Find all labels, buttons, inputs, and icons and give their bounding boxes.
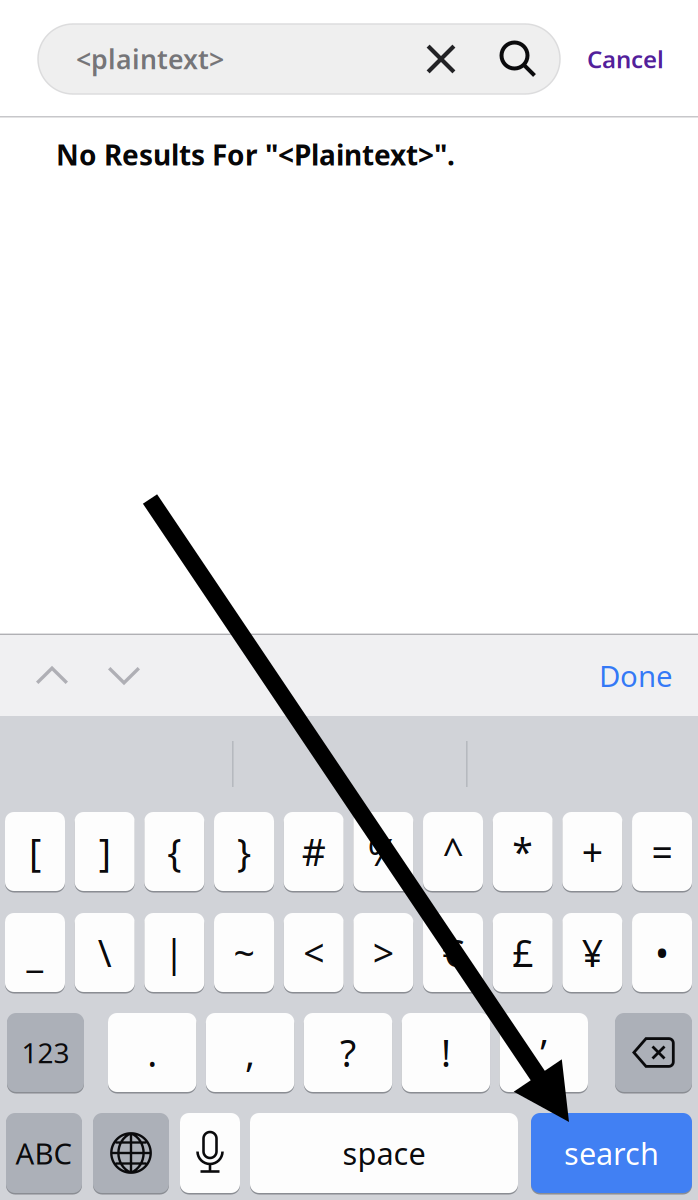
staticText: 123 bbox=[21, 1034, 69, 1071]
button[interactable]: Previous field bbox=[17, 635, 87, 716]
staticText: < bbox=[303, 928, 324, 977]
button[interactable]: { bbox=[144, 812, 204, 891]
button[interactable]: < bbox=[284, 913, 344, 992]
staticText: [ bbox=[29, 827, 41, 876]
staticText: Done bbox=[599, 656, 673, 695]
button[interactable]: Done bbox=[583, 635, 689, 716]
button[interactable]: ? bbox=[304, 1013, 392, 1092]
button[interactable]: ~ bbox=[214, 913, 274, 992]
button[interactable]: • bbox=[632, 913, 692, 992]
button[interactable]: Cancel bbox=[575, 24, 676, 94]
staticText: ? bbox=[340, 1028, 356, 1077]
staticText: # bbox=[302, 827, 326, 876]
button[interactable]: Dictation bbox=[180, 1113, 240, 1193]
staticText: € bbox=[442, 928, 463, 977]
staticText: space bbox=[342, 1133, 425, 1173]
staticText: ! bbox=[441, 1028, 451, 1077]
staticText: No Results For "<Plaintext>". bbox=[56, 136, 455, 173]
button[interactable]: ¥ bbox=[562, 913, 622, 992]
staticText: ¥ bbox=[582, 928, 603, 977]
button[interactable]: £ bbox=[493, 913, 553, 992]
button[interactable]: ABC bbox=[6, 1113, 82, 1193]
button[interactable]: % bbox=[353, 812, 413, 891]
staticText: . bbox=[147, 1028, 157, 1077]
button[interactable]: } bbox=[214, 812, 274, 891]
staticText: ^ bbox=[442, 827, 463, 876]
staticText: • bbox=[655, 928, 669, 977]
staticText: <plaintext> bbox=[76, 41, 224, 77]
button[interactable]: = bbox=[632, 812, 692, 891]
staticText: ] bbox=[99, 827, 111, 876]
button[interactable]: . bbox=[108, 1013, 196, 1092]
staticText: \ bbox=[98, 928, 112, 977]
button[interactable]: ^ bbox=[423, 812, 483, 891]
staticText: , bbox=[245, 1028, 255, 1077]
staticText: * bbox=[512, 827, 533, 876]
staticText: search bbox=[564, 1133, 659, 1173]
staticText: ~ bbox=[233, 928, 254, 977]
staticText: % bbox=[368, 827, 399, 876]
button[interactable]: | bbox=[144, 913, 204, 992]
button[interactable]: Next keyboard bbox=[93, 1113, 169, 1193]
button[interactable]: + bbox=[562, 812, 622, 891]
button[interactable]: ] bbox=[75, 812, 135, 891]
button[interactable]: > bbox=[353, 913, 413, 992]
staticText: = bbox=[651, 827, 672, 876]
button[interactable]: space bbox=[250, 1113, 518, 1193]
button[interactable]: search bbox=[531, 1113, 692, 1193]
button[interactable]: <plaintext> bbox=[38, 24, 560, 94]
button[interactable]: [ bbox=[5, 812, 65, 891]
button[interactable]: * bbox=[493, 812, 553, 891]
button[interactable]: # bbox=[284, 812, 344, 891]
button[interactable]: 123 bbox=[7, 1013, 84, 1092]
staticText: > bbox=[373, 928, 394, 977]
button[interactable]: € bbox=[423, 913, 483, 992]
staticText: + bbox=[582, 827, 603, 876]
button[interactable]: ! bbox=[402, 1013, 490, 1092]
button[interactable]: ’ bbox=[500, 1013, 588, 1092]
button[interactable]: , bbox=[206, 1013, 294, 1092]
button[interactable]: \ bbox=[75, 913, 135, 992]
staticText: Cancel bbox=[587, 43, 664, 75]
staticText: £ bbox=[512, 928, 533, 977]
button[interactable]: _ bbox=[5, 913, 65, 992]
staticText: _ bbox=[26, 928, 43, 977]
staticText: { bbox=[167, 827, 181, 876]
button[interactable]: Next field bbox=[89, 635, 159, 716]
staticText: } bbox=[237, 827, 251, 876]
button[interactable]: Delete bbox=[615, 1013, 692, 1092]
staticText: ABC bbox=[15, 1133, 72, 1172]
staticText: ’ bbox=[540, 1028, 547, 1077]
staticText: | bbox=[164, 928, 185, 977]
